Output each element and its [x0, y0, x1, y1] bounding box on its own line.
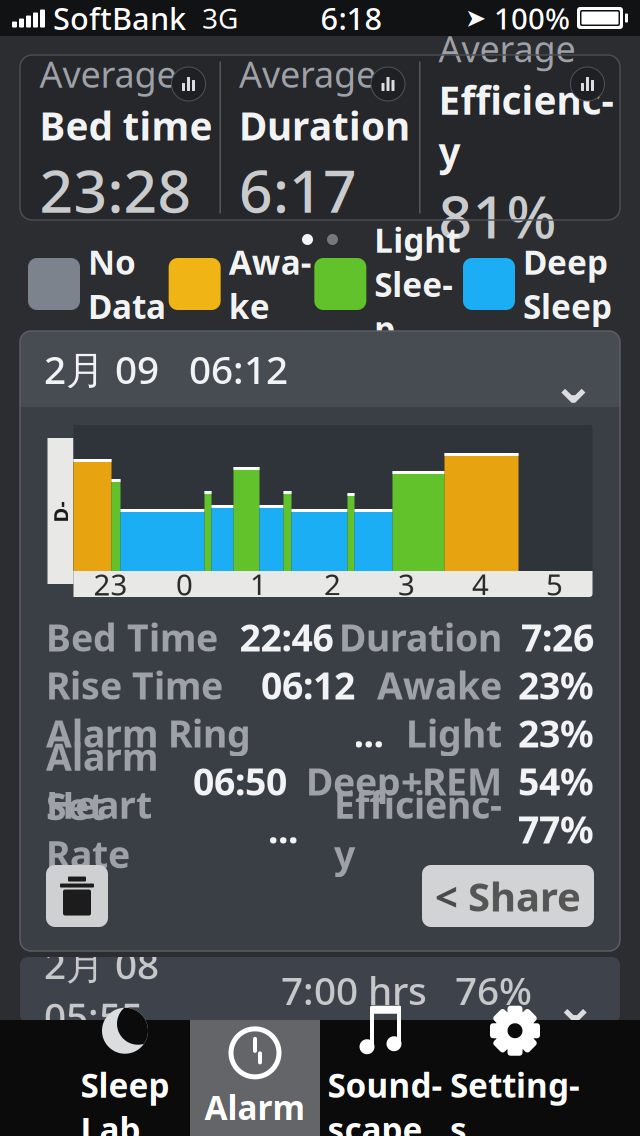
staticText: Awake	[229, 240, 312, 328]
staticText: Alarm Set	[46, 731, 158, 831]
staticText: ...	[353, 708, 383, 758]
staticText: 2	[324, 564, 341, 603]
staticText: 23%	[518, 708, 594, 758]
staticText: Rise Time	[46, 660, 223, 710]
staticText: 0	[176, 564, 193, 603]
staticText: 5	[546, 564, 563, 603]
staticText: Bed Time	[46, 612, 218, 662]
button[interactable]: Sleep Lab	[60, 1020, 190, 1136]
staticText: 6:18	[320, 0, 382, 38]
button[interactable]: Settings	[450, 1020, 580, 1136]
button[interactable]: 2月 08 05:55	[20, 957, 620, 1023]
staticText: 1	[250, 564, 267, 603]
staticText: 100%	[494, 0, 570, 37]
staticText: Efficiency	[438, 74, 613, 177]
button[interactable]: Alarm	[190, 1020, 320, 1136]
staticText: No Data	[88, 240, 166, 328]
staticText: Deep+REM	[306, 756, 502, 806]
staticText: 2月 09 06:12	[44, 343, 288, 395]
button[interactable]: Soundscape	[320, 1020, 450, 1136]
staticText: ➤	[465, 4, 486, 32]
staticText: 3	[398, 564, 415, 603]
staticText: 23:28	[39, 151, 191, 229]
staticText: Duration	[339, 612, 502, 662]
staticText: ⌄	[551, 354, 596, 414]
staticText: Efficiency	[334, 779, 502, 879]
staticText: 54%	[518, 756, 594, 806]
staticText: Average	[39, 50, 176, 98]
staticText: Sleep Lab	[80, 1063, 169, 1136]
staticText: 06:50	[193, 756, 287, 806]
staticText: Bed time	[39, 100, 212, 151]
staticText: Share	[468, 869, 581, 922]
staticText: 7:26	[521, 612, 594, 662]
staticText: 6:17	[239, 151, 357, 229]
staticText: 2月 08 05:55	[44, 939, 179, 1041]
staticText: 4	[472, 564, 489, 603]
staticText: 3G	[202, 0, 238, 37]
staticText: Average	[438, 24, 575, 72]
staticText: <	[435, 869, 458, 922]
staticText: Alarm	[204, 1085, 305, 1129]
staticText: Alarm Ring	[46, 708, 251, 758]
staticText: 22:46	[239, 612, 333, 662]
staticText: SoftBank	[53, 0, 186, 38]
staticText: Heart Rate	[46, 779, 152, 879]
button[interactable]: Average	[420, 55, 618, 220]
staticText: Awake	[377, 660, 502, 710]
staticText: 23%	[518, 660, 594, 710]
button[interactable]: <	[422, 865, 594, 927]
staticText: ⌄	[554, 976, 596, 1033]
staticText: 06:12	[261, 660, 355, 710]
staticText: Soundscape	[327, 1063, 442, 1136]
staticText: Light Sleep	[374, 218, 460, 350]
button[interactable]: 2月 09 06:12	[20, 331, 620, 407]
staticText: 76%	[455, 964, 532, 1016]
button[interactable]: Delete	[46, 865, 108, 927]
staticText: Deep Sleep	[523, 240, 612, 328]
button[interactable]: Average	[21, 55, 219, 220]
staticText: 77%	[518, 804, 594, 854]
staticText: ...	[268, 804, 298, 854]
staticText: Light	[406, 708, 502, 758]
staticText: SLEEP DEPTH	[49, 391, 72, 630]
button[interactable]: Average	[221, 55, 419, 220]
staticText: Average	[239, 50, 376, 98]
staticText: 23	[93, 564, 127, 603]
staticText: 7:00 hrs	[281, 964, 427, 1016]
staticText: 81%	[438, 177, 556, 255]
staticText: Settings	[450, 1063, 580, 1136]
staticText: Duration	[239, 100, 410, 151]
